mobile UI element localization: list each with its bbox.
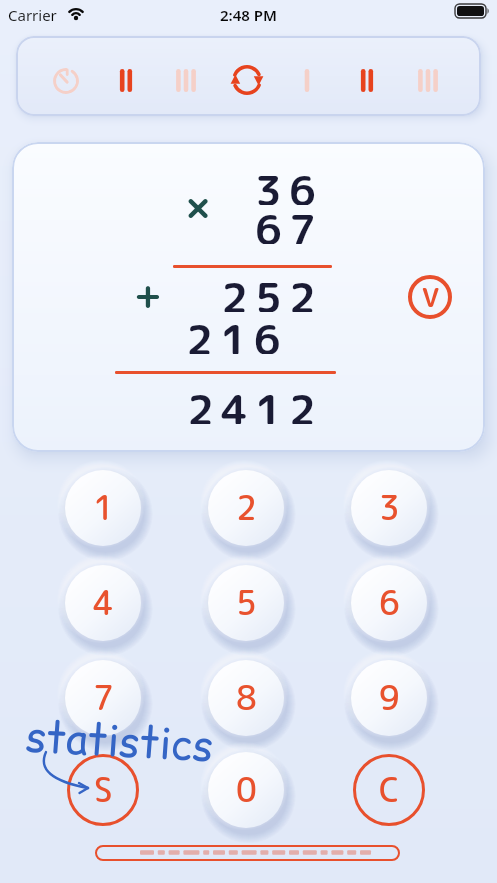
button[interactable] (46, 60, 86, 100)
staticText: S (94, 767, 113, 813)
staticText: 2 (236, 485, 257, 531)
staticText: 67 (255, 200, 323, 244)
button[interactable] (287, 60, 327, 100)
staticText: statistics (25, 707, 215, 776)
staticText: 6 (379, 580, 400, 626)
staticText: + (134, 267, 162, 311)
staticText: 7 (93, 675, 114, 721)
button[interactable]: 5 (208, 565, 284, 641)
staticText: 5 (236, 580, 257, 626)
staticText: 9 (379, 675, 400, 721)
staticText: 8 (236, 675, 257, 721)
button[interactable]: C (353, 754, 425, 826)
staticText: Carrier (8, 5, 57, 25)
button[interactable]: 9 (351, 660, 427, 736)
staticText: 216 (186, 310, 288, 354)
staticText: 36 (255, 161, 323, 205)
staticText: 252 (221, 268, 323, 312)
button[interactable]: 2 (208, 470, 284, 546)
staticText: 1 (93, 485, 114, 531)
button[interactable] (408, 60, 448, 100)
button[interactable]: 8 (208, 660, 284, 736)
button[interactable] (347, 60, 387, 100)
staticText: × (187, 178, 210, 222)
staticText: C (379, 767, 400, 813)
button[interactable]: V (408, 275, 452, 319)
button[interactable] (227, 60, 267, 100)
button[interactable]: 1 (65, 470, 141, 546)
button[interactable]: S (67, 754, 139, 826)
button[interactable]: 0 (208, 752, 284, 828)
button[interactable]: 3 (351, 470, 427, 546)
button[interactable]: 7 (65, 660, 141, 736)
button[interactable]: 6 (351, 565, 427, 641)
staticText: 3 (379, 485, 400, 531)
button[interactable] (106, 60, 146, 100)
button[interactable]: 4 (65, 565, 141, 641)
staticText: 2412 (187, 380, 323, 424)
staticText: 2:48 PM (220, 5, 277, 25)
staticText: 4 (93, 580, 114, 626)
button[interactable] (166, 60, 206, 100)
staticText: 0 (236, 767, 257, 813)
staticText: V (422, 279, 439, 315)
